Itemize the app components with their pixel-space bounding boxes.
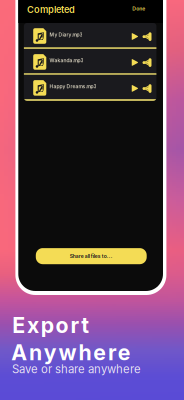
staticText: My Diary.mp3 bbox=[49, 32, 82, 38]
button[interactable]: Wakanda.mp3 bbox=[24, 49, 156, 73]
button[interactable]: Happy Dreams.mp3 bbox=[24, 75, 156, 99]
staticText: Done bbox=[132, 6, 145, 12]
staticText: Export bbox=[12, 312, 89, 338]
button[interactable]: Done bbox=[132, 6, 145, 12]
staticText: Share all files to... bbox=[70, 253, 113, 259]
staticText: Completed bbox=[27, 4, 75, 15]
button[interactable]: Share all files to... bbox=[36, 248, 147, 264]
staticText: Wakanda.mp3 bbox=[49, 57, 83, 63]
staticText: Save or share anywhere bbox=[12, 362, 141, 376]
staticText: Anywhere bbox=[11, 340, 131, 365]
staticText: Happy Dreams.mp3 bbox=[49, 83, 96, 89]
button[interactable]: My Diary.mp3 bbox=[24, 23, 156, 47]
